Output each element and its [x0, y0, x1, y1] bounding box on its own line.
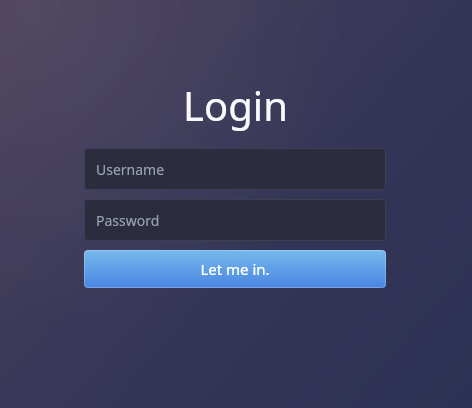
button[interactable]: Let me in.: [84, 250, 386, 288]
staticText: Password: [96, 211, 160, 230]
staticText: Let me in.: [200, 259, 270, 279]
button[interactable]: Password: [84, 199, 386, 241]
staticText: Login: [183, 78, 288, 132]
staticText: Username: [96, 160, 165, 179]
button[interactable]: Username: [84, 148, 386, 190]
